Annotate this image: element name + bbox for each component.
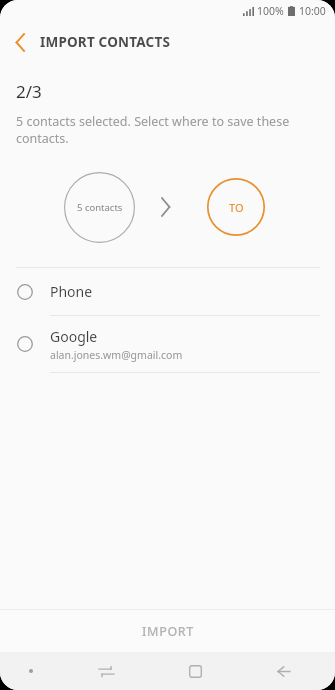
button[interactable]: Back — [0, 22, 40, 62]
button[interactable]: 5 contacts — [64, 172, 135, 243]
staticText: 100% — [257, 4, 284, 18]
staticText: 5 contacts — [77, 201, 123, 214]
staticText: IMPORT CONTACTS — [40, 33, 171, 51]
staticText: alan.jones.wm@gmail.com — [50, 348, 183, 362]
button[interactable]: Back — [239, 652, 327, 690]
button[interactable]: Home — [151, 652, 239, 690]
staticText: IMPORT — [142, 623, 194, 640]
staticText: Google — [50, 327, 98, 346]
staticText: TO — [229, 200, 244, 215]
staticText: 2/3 — [16, 80, 42, 103]
button[interactable]: Phone — [0, 268, 335, 315]
button[interactable]: IMPORT — [0, 610, 335, 652]
staticText: 5 contacts selected. Select where to sav… — [16, 113, 313, 147]
staticText: 10:00 — [299, 4, 326, 18]
button[interactable]: Google — [0, 316, 335, 372]
staticText: Phone — [50, 282, 93, 301]
button[interactable]: TO — [207, 178, 265, 236]
button[interactable]: Indicator — [0, 652, 62, 690]
button[interactable]: Recents — [62, 652, 151, 690]
